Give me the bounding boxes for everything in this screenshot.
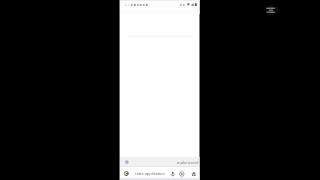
button[interactable]: Incognito mode [191, 171, 197, 177]
staticText: cube application [135, 171, 166, 176]
button[interactable]: Google search [124, 171, 129, 176]
staticText: makeuseof.com [177, 160, 200, 166]
button[interactable]: Voice search [170, 171, 176, 177]
button[interactable]: makeuseof.com [120, 157, 200, 166]
button[interactable]: Google Lens [179, 171, 185, 177]
